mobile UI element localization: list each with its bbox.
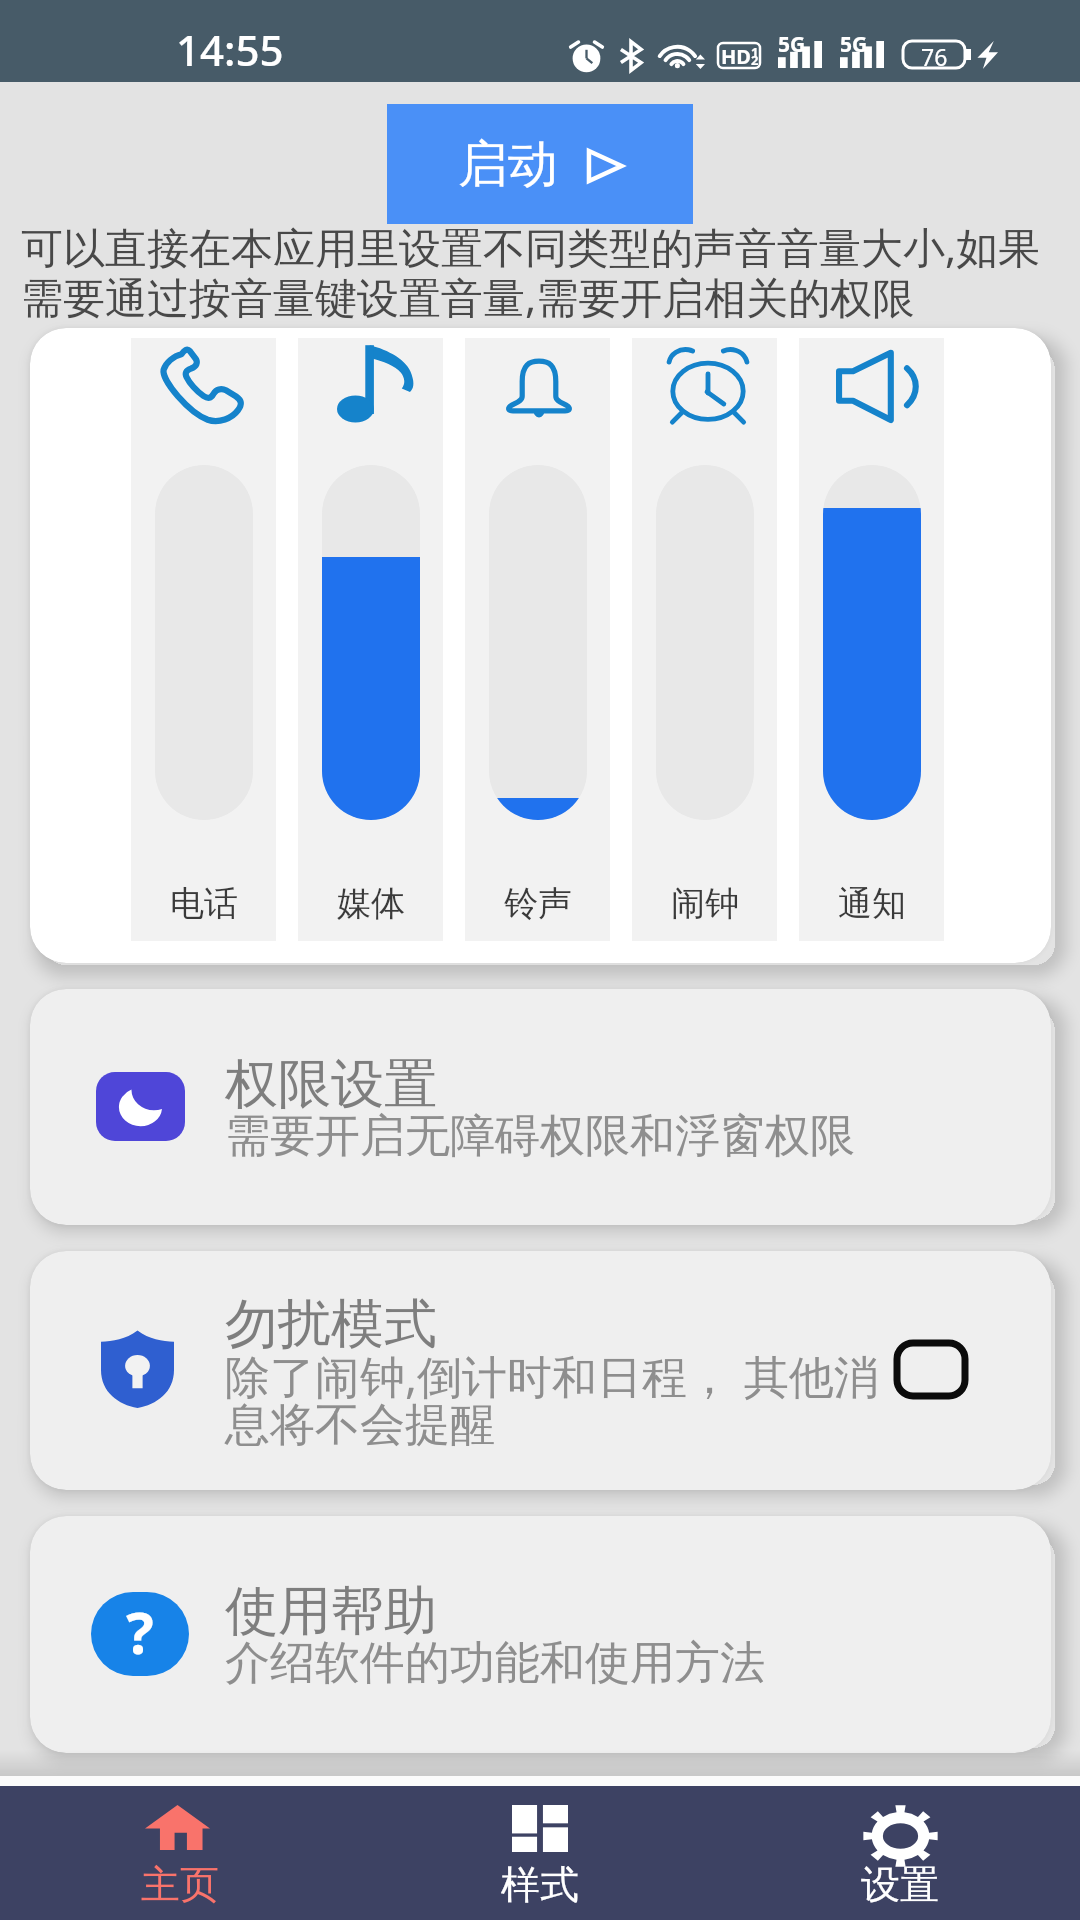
button[interactable]: 媒体 <box>298 338 443 941</box>
staticText: 介绍软件的功能和使用方法 <box>225 1635 765 1692</box>
button[interactable]: 权限设置 <box>30 989 1051 1225</box>
staticText: 电话 <box>170 882 238 925</box>
staticText: 设置 <box>861 1860 939 1909</box>
staticText: 1 <box>751 43 758 61</box>
button[interactable]: 闹钟 <box>632 338 777 941</box>
button[interactable]: 铃声 <box>465 338 610 941</box>
staticText: ? <box>126 1592 154 1671</box>
staticText: 媒体 <box>337 882 405 925</box>
staticText: HD <box>721 43 751 68</box>
button[interactable]: 启动 <box>387 104 693 224</box>
staticText: 权限设置 <box>225 1051 437 1118</box>
button[interactable]: Do not disturb toggle <box>897 1343 965 1396</box>
staticText: 可以直接在本应用里设置不同类型的声音音量大小,如果需要通过按音量键设置音量,需要… <box>21 218 1078 325</box>
button[interactable]: 通知 <box>799 338 944 941</box>
button[interactable]: ? <box>30 1516 1051 1753</box>
button[interactable]: 勿扰模式 <box>30 1251 1051 1490</box>
button[interactable]: 样式 <box>360 1786 720 1920</box>
staticText: 2 <box>751 51 758 69</box>
staticText: 启动 <box>458 133 558 196</box>
staticText: 使用帮助 <box>225 1578 437 1645</box>
button[interactable]: 设置 <box>720 1786 1080 1920</box>
staticText: 勿扰模式 <box>225 1291 437 1358</box>
staticText: 5G <box>840 30 868 59</box>
button[interactable]: 电话 <box>131 338 276 941</box>
staticText: 需要开启无障碍权限和浮窗权限 <box>225 1108 855 1165</box>
staticText: 主页 <box>141 1860 219 1909</box>
button[interactable]: 主页 <box>0 1786 360 1920</box>
staticText: 14:55 <box>176 21 284 78</box>
staticText: 76 <box>921 41 948 68</box>
staticText: 通知 <box>838 882 906 925</box>
staticText: 5G <box>778 30 806 59</box>
staticText: 除了闹钟,倒计时和日程， 其他消息将不会提醒 <box>225 1345 895 1453</box>
staticText: 样式 <box>501 1860 579 1909</box>
staticText: 铃声 <box>504 882 572 925</box>
staticText: 闹钟 <box>671 882 739 925</box>
